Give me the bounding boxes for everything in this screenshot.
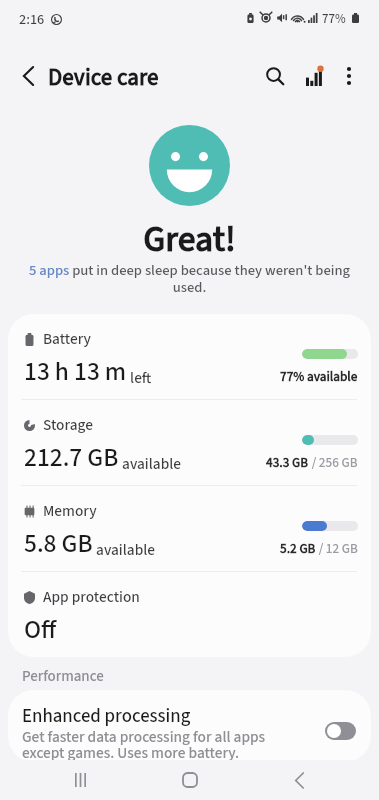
staticText: 5.8 GB <box>24 526 93 562</box>
staticText: Battery <box>43 328 91 350</box>
staticText: Performance <box>22 666 104 687</box>
staticText: Storage <box>43 414 93 436</box>
staticText: / 256 GB <box>309 453 358 472</box>
staticText: left <box>127 367 152 389</box>
staticText: / 12 GB <box>316 539 358 558</box>
button[interactable]: Home <box>160 760 220 800</box>
staticText: available <box>93 539 156 561</box>
staticText: 5 apps put in deep sleep because they we… <box>29 260 350 298</box>
button[interactable]: Memory <box>8 486 371 571</box>
button[interactable]: Enhanced processing toggle <box>325 722 356 740</box>
staticText: Off <box>24 612 57 648</box>
staticText: 2:16 <box>19 9 45 29</box>
button[interactable]: More options <box>327 54 371 98</box>
staticText: 77% <box>322 10 346 28</box>
button[interactable]: Recent apps <box>50 760 110 800</box>
staticText: 77% available <box>280 367 358 386</box>
staticText: App protection <box>43 586 140 608</box>
button[interactable]: Search <box>253 54 297 98</box>
staticText: available <box>119 453 182 475</box>
button[interactable] <box>8 690 371 762</box>
button[interactable]: Battery <box>8 314 371 399</box>
staticText: Get faster data processing for all apps … <box>22 726 304 762</box>
staticText: Enhanced processing <box>22 703 191 730</box>
staticText: Memory <box>43 500 97 522</box>
staticText: 5.2 GB <box>280 539 316 558</box>
staticText: 212.7 GB <box>24 440 119 476</box>
staticText: Great! <box>0 215 379 266</box>
staticText: 13 h 13 m <box>24 354 127 390</box>
button[interactable]: Storage <box>8 400 371 485</box>
button[interactable]: App protection <box>8 572 371 657</box>
staticText: 43.3 GB <box>266 453 309 472</box>
button[interactable]: Usage history <box>292 54 336 98</box>
staticText: Device care <box>48 61 159 94</box>
button[interactable]: Back <box>269 760 329 800</box>
button[interactable]: Navigate up <box>6 54 50 98</box>
